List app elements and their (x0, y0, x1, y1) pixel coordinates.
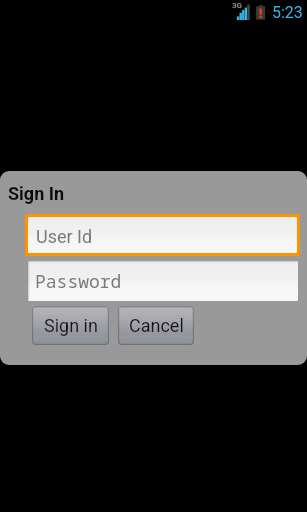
button[interactable]: User Id (28, 217, 297, 253)
button[interactable]: Password (28, 261, 298, 301)
staticText: Sign In (8, 183, 65, 204)
button[interactable]: Cancel (118, 306, 194, 345)
staticText: Cancel (129, 315, 184, 336)
staticText: User Id (36, 226, 93, 247)
staticText: Password (35, 269, 122, 294)
button[interactable]: Mobile signal 3G (231, 0, 252, 20)
other: Battery low (255, 4, 267, 22)
staticText: 3G (232, 1, 243, 10)
staticText: 5:23 (272, 3, 303, 22)
button[interactable]: Sign in (32, 306, 109, 345)
staticText: Sign in (44, 315, 98, 336)
